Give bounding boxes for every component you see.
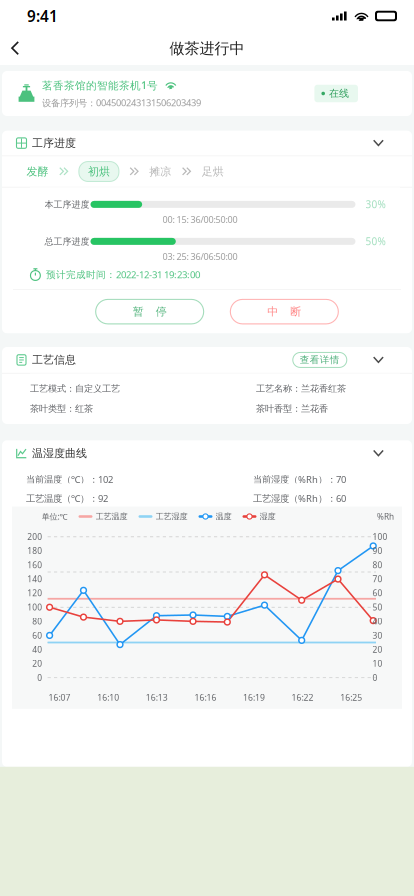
staticText: 设备序列号：004500243131506203439 — [42, 96, 201, 109]
staticText: 温度 — [215, 511, 231, 522]
staticText: 30 — [372, 630, 382, 641]
staticText: 60 — [372, 587, 382, 599]
staticText: 预计完成时间：2022-12-31 19:23:00 — [46, 268, 200, 281]
staticText: 本工序进度 — [44, 199, 89, 210]
staticText: 9:41 — [27, 6, 58, 26]
staticText: 工艺湿度 — [155, 511, 187, 522]
button[interactable]: Collapse section — [368, 445, 389, 462]
staticText: 0 — [37, 672, 42, 683]
staticText: 100 — [372, 531, 387, 542]
staticText: 20 — [32, 658, 42, 669]
staticText: 发酵 — [26, 165, 48, 178]
staticText: 30% — [365, 198, 385, 211]
button[interactable]: 中 断 — [230, 299, 338, 324]
staticText: 80 — [32, 616, 42, 627]
button[interactable]: 暂 停 — [96, 299, 204, 324]
staticText: 工艺模式：自定义工艺 — [30, 383, 120, 394]
staticText: 00: 15: 36/00:50:00 — [162, 213, 237, 226]
staticText: 200 — [27, 531, 42, 542]
staticText: 中 断 — [267, 305, 301, 319]
staticText: 茶叶香型：兰花香 — [256, 403, 328, 414]
button[interactable]: Collapse section — [368, 134, 389, 152]
staticText: 工序进度 — [32, 136, 76, 150]
staticText: 在线 — [329, 87, 349, 100]
staticText: 16:16 — [194, 692, 216, 703]
staticText: 工艺湿度（%Rh）：60 — [253, 492, 346, 505]
staticText: 10 — [372, 658, 382, 669]
staticText: 40 — [32, 644, 42, 655]
staticText: 03: 25: 36/06:50:00 — [162, 250, 237, 263]
staticText: 16:07 — [49, 692, 71, 703]
staticText: 16:25 — [340, 692, 362, 703]
staticText: 摊凉 — [149, 165, 171, 178]
staticText: 80 — [372, 559, 382, 571]
staticText: 70 — [372, 573, 382, 585]
staticText: 足烘 — [202, 165, 224, 178]
button[interactable]: Collapse section — [368, 351, 389, 369]
staticText: 当前湿度（%Rh）：70 — [253, 473, 346, 486]
staticText: 90 — [372, 545, 382, 556]
staticText: 0 — [372, 672, 377, 683]
staticText: %Rh — [377, 511, 394, 522]
staticText: 120 — [27, 587, 42, 599]
staticText: 16:10 — [97, 692, 119, 703]
staticText: 16:22 — [292, 692, 314, 703]
staticText: 工艺信息 — [32, 353, 76, 367]
staticText: 160 — [27, 559, 42, 571]
staticText: 100 — [27, 601, 42, 613]
staticText: 茶叶类型：红茶 — [30, 403, 93, 414]
staticText: 茗香茶馆的智能茶机1号 — [42, 78, 158, 92]
staticText: 40 — [372, 616, 382, 627]
staticText: 温湿度曲线 — [32, 446, 87, 460]
staticText: 总工序进度 — [44, 236, 89, 247]
staticText: 暂 停 — [133, 305, 167, 319]
staticText: 查看详情 — [300, 354, 340, 366]
staticText: 50% — [365, 235, 385, 248]
staticText: 16:13 — [146, 692, 168, 703]
staticText: 当前温度（℃）：102 — [26, 473, 113, 486]
staticText: 140 — [27, 573, 42, 585]
staticText: 工艺温度 — [95, 511, 127, 522]
staticText: 20 — [372, 644, 382, 655]
staticText: 50 — [372, 601, 382, 613]
staticText: 60 — [32, 630, 42, 641]
staticText: 16:19 — [243, 692, 265, 703]
staticText: 工艺温度（℃）：92 — [26, 492, 108, 505]
button[interactable]: Back — [0, 32, 34, 65]
staticText: 180 — [27, 545, 42, 556]
staticText: 做茶进行中 — [169, 39, 244, 58]
staticText: 工艺名称：兰花香红茶 — [256, 383, 346, 394]
button[interactable]: 查看详情 — [293, 352, 347, 367]
staticText: 单位:℃ — [41, 511, 67, 522]
staticText: 湿度 — [259, 511, 275, 522]
staticText: 初烘 — [88, 165, 110, 178]
